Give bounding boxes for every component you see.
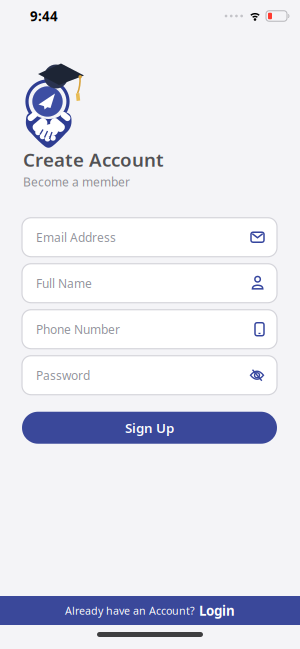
staticText: Create Account: [23, 147, 164, 172]
button[interactable]: Full Name: [22, 264, 277, 303]
staticText: Already have an Account?: [65, 603, 195, 618]
button[interactable]: Email Address: [22, 218, 277, 257]
staticText: Email Address: [36, 229, 116, 245]
staticText: Password: [36, 367, 90, 383]
button[interactable]: Sign Up: [22, 412, 277, 444]
button[interactable]: Already have an Account?: [0, 596, 300, 625]
staticText: Full Name: [36, 275, 92, 291]
button[interactable]: Phone Number: [22, 310, 277, 349]
staticText: Login: [199, 602, 235, 619]
staticText: Sign Up: [125, 419, 174, 437]
staticText: Become a member: [23, 174, 130, 190]
staticText: 9:44: [30, 7, 58, 25]
button[interactable]: Password: [22, 356, 277, 395]
staticText: Phone Number: [36, 321, 120, 337]
